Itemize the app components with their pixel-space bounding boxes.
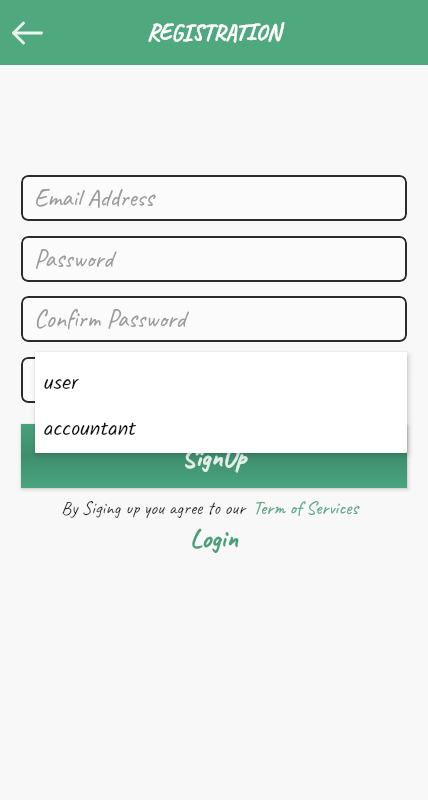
button[interactable]: SignUp xyxy=(21,424,407,488)
button[interactable]: Email Address xyxy=(21,175,407,221)
staticText: REGISTRATION xyxy=(147,18,281,47)
button[interactable]: Password xyxy=(21,236,407,282)
staticText: SignUp xyxy=(182,440,246,474)
staticText: user xyxy=(44,368,78,400)
button[interactable]: Login xyxy=(190,521,238,555)
staticText: By Siging up you agree to our xyxy=(61,496,246,520)
button[interactable]: Back xyxy=(3,9,51,57)
staticText: Confirm Password xyxy=(34,303,186,335)
button[interactable]: user xyxy=(35,359,407,409)
button[interactable]: Confirm Password xyxy=(21,296,407,342)
button[interactable] xyxy=(21,357,407,403)
button[interactable]: Term of Services xyxy=(253,496,358,520)
staticText: Email Address xyxy=(34,182,154,214)
staticText: accountant xyxy=(44,414,137,446)
staticText: Password xyxy=(34,243,114,275)
button[interactable]: accountant xyxy=(35,405,407,453)
